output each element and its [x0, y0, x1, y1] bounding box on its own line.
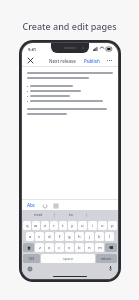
button[interactable]: e: [41, 221, 49, 230]
button[interactable]: Backspace: [105, 243, 117, 252]
button[interactable]: Next release: [47, 58, 78, 64]
staticText: a: [29, 234, 32, 240]
staticText: r: [53, 223, 55, 229]
staticText: k: [98, 234, 101, 240]
staticText: to: [69, 212, 73, 217]
button[interactable]: i: [88, 221, 97, 230]
staticText: next: [34, 212, 43, 217]
button[interactable]: y: [68, 221, 77, 230]
staticText: Abc: [27, 202, 35, 208]
button[interactable]: v: [65, 243, 74, 252]
staticText: t: [62, 223, 64, 229]
button[interactable]: Attach: [41, 202, 48, 209]
button[interactable]: d: [45, 232, 54, 241]
staticText: 9:41: [28, 47, 36, 52]
staticText: u: [81, 223, 84, 229]
button[interactable]: f: [55, 232, 64, 241]
button[interactable]: g: [65, 232, 74, 241]
button[interactable]: Emoji keyboard: [26, 265, 33, 272]
button[interactable]: next: [22, 210, 54, 219]
button[interactable]: o: [98, 221, 107, 230]
staticText: b: [78, 245, 81, 251]
button[interactable]: c: [55, 243, 64, 252]
button[interactable]: Dictation: [107, 265, 114, 272]
staticText: Next release: [49, 58, 76, 64]
button[interactable]: x: [45, 243, 54, 252]
button[interactable]: h: [75, 232, 84, 241]
staticText: Publish: [84, 58, 100, 64]
button[interactable]: j: [85, 232, 94, 241]
button[interactable]: r: [50, 221, 58, 230]
staticText: n: [88, 245, 91, 251]
staticText: 123: [28, 256, 35, 261]
staticText: Create and edit pages: [22, 20, 117, 32]
button[interactable]: a: [26, 232, 34, 241]
button[interactable]: l: [105, 232, 114, 241]
staticText: f: [59, 234, 61, 240]
staticText: j: [89, 234, 91, 240]
staticText: e: [44, 223, 47, 229]
button[interactable]: Abc: [26, 202, 36, 208]
staticText: d: [48, 234, 51, 240]
button[interactable]: s: [35, 232, 44, 241]
button[interactable]: n: [85, 243, 94, 252]
staticText: space: [63, 256, 74, 261]
staticText: o: [101, 223, 104, 229]
staticText: g: [68, 234, 71, 240]
button[interactable]: space: [41, 254, 95, 263]
staticText: q: [26, 223, 29, 229]
button[interactable]: 123: [23, 254, 40, 263]
button[interactable]: u: [78, 221, 87, 230]
button[interactable]: Publish: [82, 58, 102, 64]
staticText: z: [39, 245, 41, 251]
button[interactable]: More options: [105, 56, 114, 65]
button[interactable]: return: [96, 254, 117, 263]
button[interactable]: to: [55, 210, 86, 219]
button[interactable]: q: [23, 221, 31, 230]
button[interactable]: Shift: [23, 243, 34, 252]
button[interactable]: m: [95, 243, 104, 252]
staticText: x: [48, 245, 51, 251]
button[interactable]: w: [32, 221, 40, 230]
staticText: c: [58, 245, 61, 251]
staticText: p: [111, 223, 114, 229]
button[interactable]: z: [35, 243, 44, 252]
staticText: s: [38, 234, 41, 240]
button[interactable]: k: [95, 232, 104, 241]
button[interactable]: t: [59, 221, 67, 230]
button[interactable]: b: [75, 243, 84, 252]
staticText: m: [98, 245, 102, 251]
staticText: l: [109, 234, 111, 240]
staticText: i: [92, 223, 94, 229]
staticText: return: [101, 256, 112, 261]
staticText: y: [71, 223, 74, 229]
staticText: w: [34, 223, 38, 229]
button[interactable]: Insert table: [52, 202, 59, 209]
button[interactable]: Close: [26, 56, 35, 65]
button[interactable]: p: [108, 221, 117, 230]
staticText: h: [78, 234, 81, 240]
staticText: v: [68, 245, 71, 251]
